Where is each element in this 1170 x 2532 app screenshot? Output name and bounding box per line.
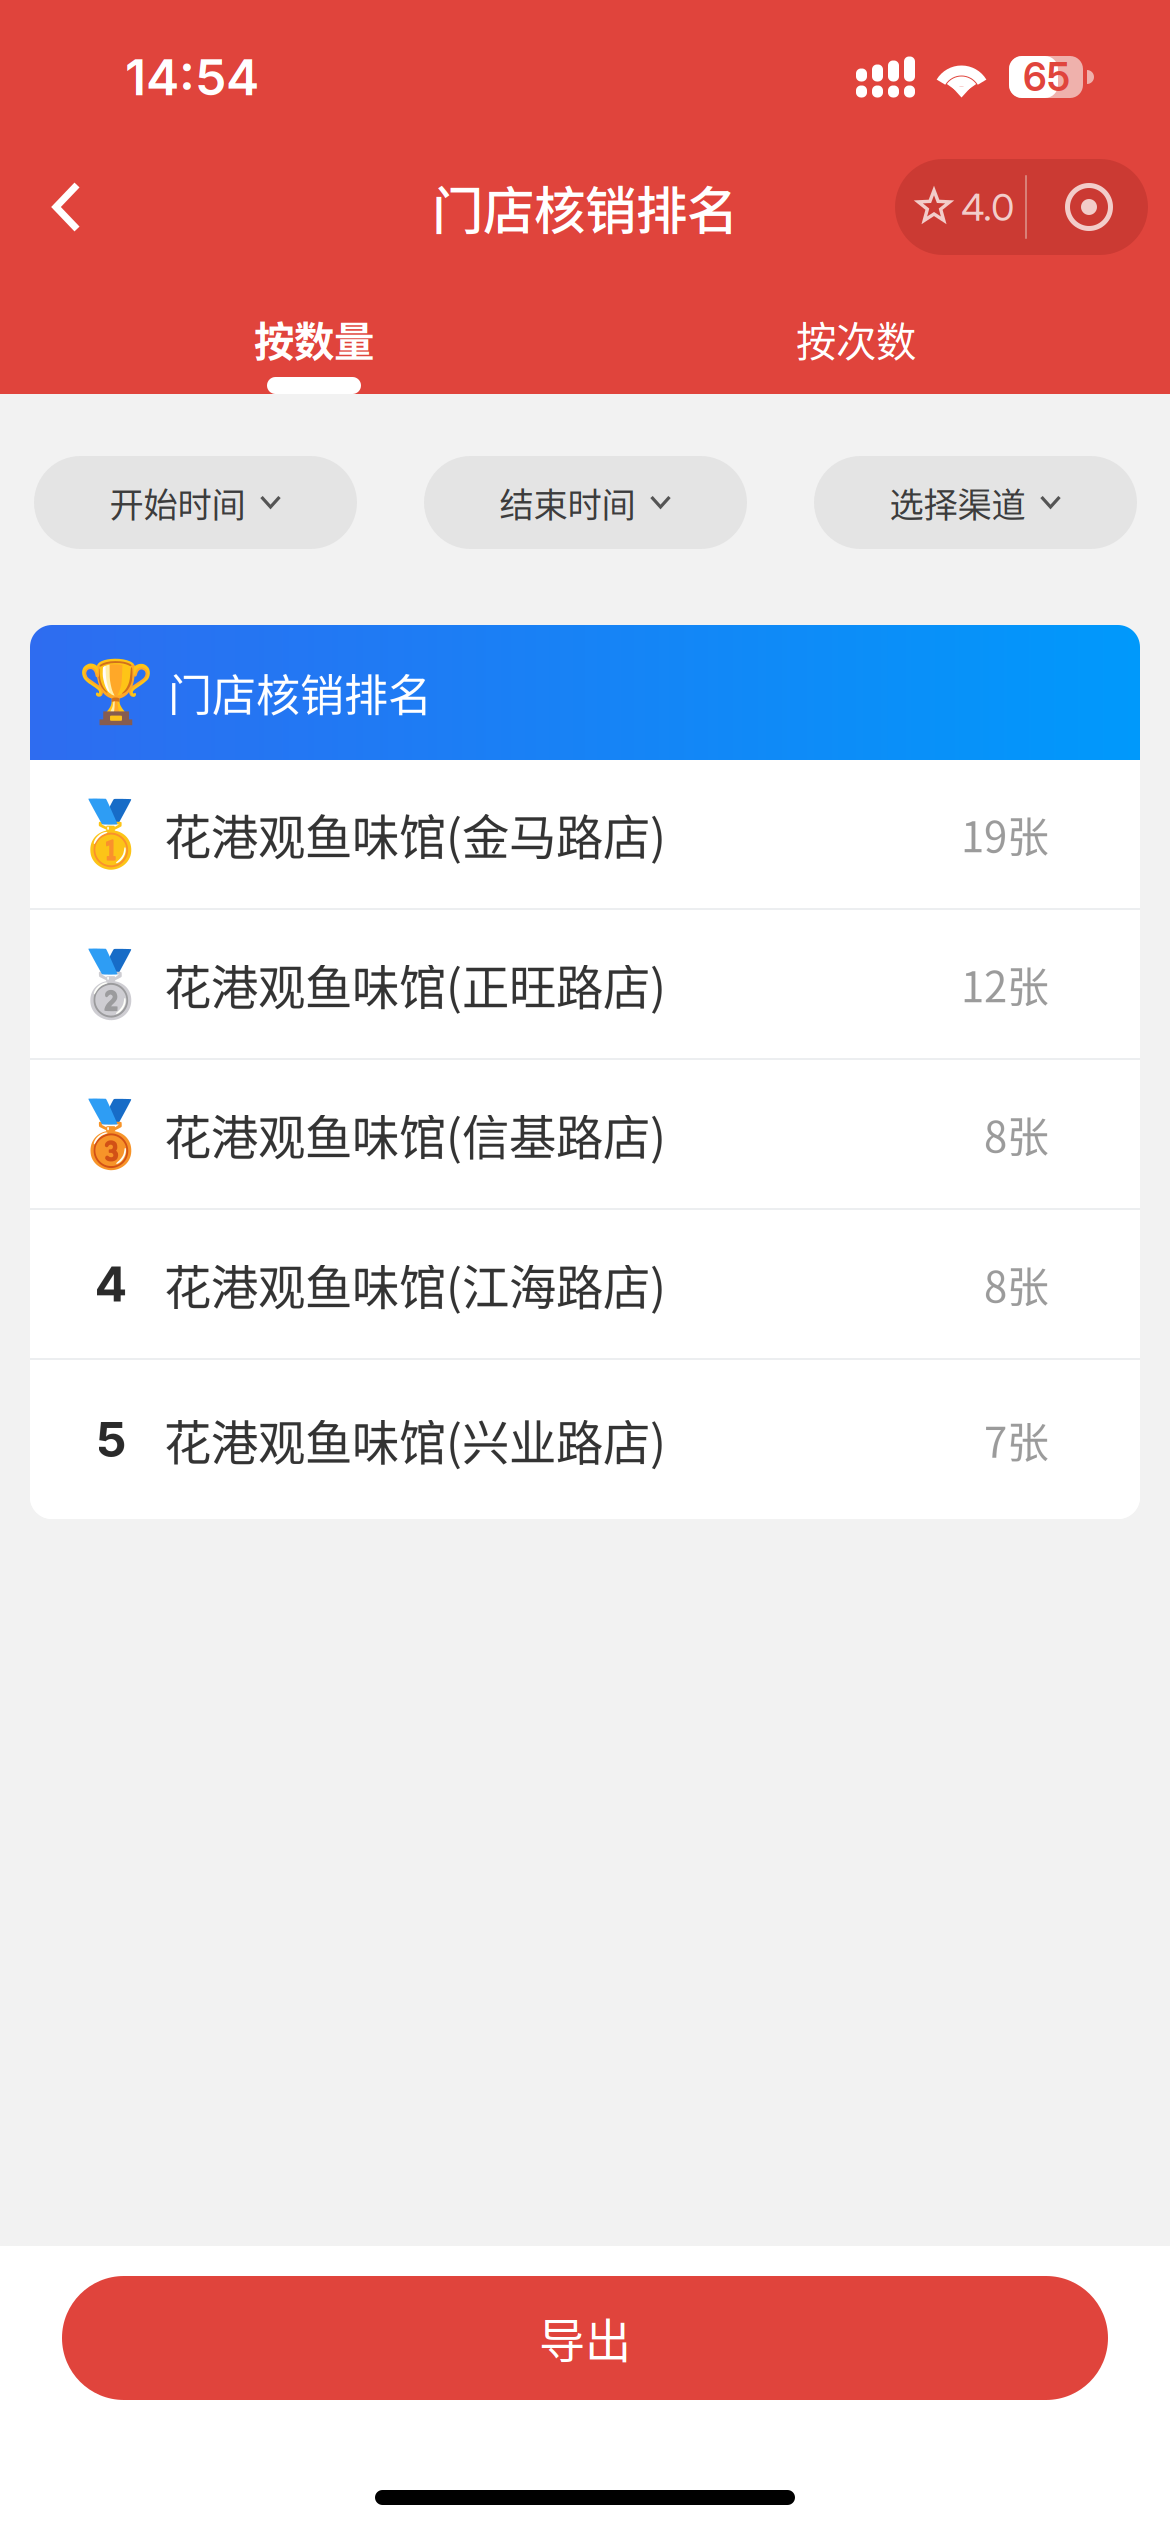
staticText: 花港观鱼味馆(金马路店) bbox=[164, 800, 666, 868]
staticText: 5 bbox=[95, 1410, 126, 1469]
staticText: 🥉 bbox=[71, 1096, 151, 1171]
button[interactable]: 返回 bbox=[0, 159, 107, 255]
staticText: 12张 bbox=[961, 954, 1049, 1014]
button[interactable]: 4 bbox=[30, 1210, 1140, 1358]
staticText: 花港观鱼味馆(正旺路店) bbox=[164, 950, 666, 1018]
button[interactable]: 🥈 bbox=[30, 910, 1140, 1058]
staticText: 65 bbox=[1023, 54, 1070, 100]
staticText: 19张 bbox=[961, 804, 1049, 864]
staticText: 门店核销排名 bbox=[168, 661, 432, 724]
staticText: 开始时间 bbox=[109, 478, 245, 527]
staticText: 按次数 bbox=[796, 310, 916, 368]
staticText: 门店核销排名 bbox=[432, 170, 738, 244]
staticText: 🏆 bbox=[78, 657, 154, 728]
staticText: 🥇 bbox=[71, 796, 151, 871]
button[interactable]: 开始时间 bbox=[34, 456, 357, 549]
staticText: 花港观鱼味馆(信基路店) bbox=[164, 1100, 666, 1168]
staticText: 花港观鱼味馆(江海路店) bbox=[164, 1250, 666, 1318]
staticText: 7张 bbox=[984, 1409, 1049, 1470]
button[interactable]: 5 bbox=[30, 1360, 1140, 1519]
staticText: 8张 bbox=[984, 1104, 1049, 1164]
staticText: 花港观鱼味馆(兴业路店) bbox=[164, 1405, 666, 1474]
staticText: 导出 bbox=[539, 2305, 631, 2371]
staticText: 结束时间 bbox=[499, 478, 635, 527]
staticText: 4.0 bbox=[961, 184, 1014, 230]
button[interactable]: 更多 bbox=[1027, 159, 1148, 255]
button[interactable]: 🥇 bbox=[30, 760, 1140, 908]
staticText: 🥈 bbox=[71, 946, 151, 1021]
staticText: 按数量 bbox=[254, 310, 374, 368]
staticText: 选择渠道 bbox=[889, 478, 1025, 527]
staticText: 14:54 bbox=[125, 47, 259, 107]
button[interactable]: 🥉 bbox=[30, 1060, 1140, 1208]
button[interactable]: 按次数 bbox=[585, 310, 1127, 394]
staticText: 4 bbox=[94, 1255, 127, 1313]
button[interactable]: 按数量 bbox=[43, 310, 585, 394]
button[interactable]: 选择渠道 bbox=[814, 456, 1137, 549]
button[interactable]: 结束时间 bbox=[424, 456, 747, 549]
button[interactable]: 评分 4.0 bbox=[895, 159, 1025, 255]
staticText: 8张 bbox=[984, 1254, 1049, 1314]
button[interactable]: 导出 bbox=[62, 2276, 1108, 2400]
